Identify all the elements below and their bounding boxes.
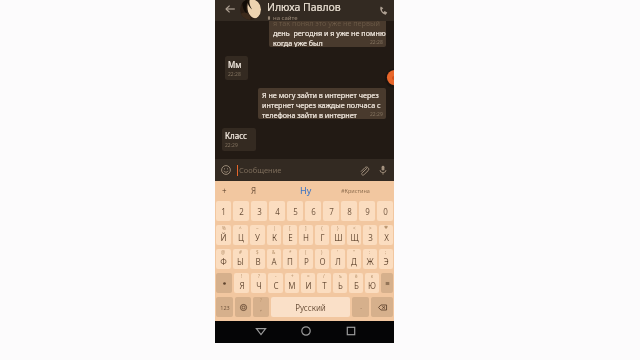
- button[interactable]: Home: [296, 321, 316, 341]
- button[interactable]: ;: [379, 249, 393, 269]
- staticText: {: [321, 225, 323, 231]
- button[interactable]: 0: [377, 201, 393, 221]
- staticText: Ш: [334, 232, 343, 243]
- button[interactable]: =: [301, 273, 315, 293]
- button[interactable]: +: [215, 181, 234, 199]
- staticText: ъ: [339, 273, 342, 279]
- button[interactable]: ё: [349, 273, 363, 293]
- button[interactable]: 7: [323, 201, 339, 221]
- staticText: 22:28: [370, 39, 383, 46]
- button[interactable]: 1: [216, 201, 231, 221]
- staticText: Я: [251, 185, 257, 196]
- button[interactable]: 9: [359, 201, 375, 221]
- button[interactable]: }: [331, 225, 345, 245]
- button[interactable]: ?: [253, 297, 269, 317]
- staticText: О: [319, 256, 326, 267]
- button[interactable]: ~: [250, 225, 265, 245]
- button[interactable]: 4: [269, 201, 285, 221]
- button[interactable]: Русский: [271, 297, 350, 317]
- button[interactable]: 8: [341, 201, 357, 221]
- button[interactable]: є: [365, 273, 379, 293]
- button[interactable]: Voice message: [376, 163, 390, 177]
- button[interactable]: [371, 297, 393, 317]
- button[interactable]: Ну: [274, 181, 337, 199]
- button[interactable]: Мм: [225, 56, 248, 80]
- button[interactable]: Класс: [222, 128, 256, 151]
- staticText: П: [287, 256, 293, 267]
- staticText: Т: [322, 280, 327, 291]
- staticText: ~: [256, 225, 259, 231]
- button[interactable]: ?: [251, 273, 266, 293]
- button[interactable]: @: [216, 249, 231, 269]
- staticText: ": [353, 249, 355, 255]
- staticText: на сайте: [273, 14, 298, 21]
- button[interactable]: 6: [305, 201, 321, 221]
- staticText: интернет через каждые полчаса с: [262, 100, 381, 110]
- staticText: є: [371, 273, 374, 279]
- button[interactable]: 2: [233, 201, 249, 221]
- button[interactable]: Scroll to bottom: [385, 68, 394, 88]
- button[interactable]: Attach file: [357, 163, 371, 177]
- staticText: >: [369, 225, 372, 231]
- staticText: я так понял это уже не первый: [273, 18, 380, 28]
- button[interactable]: ^: [233, 225, 248, 245]
- button[interactable]: ): [315, 249, 329, 269]
- button[interactable]: я так понял это уже не первый: [269, 17, 386, 47]
- button[interactable]: Recent apps: [341, 321, 361, 341]
- button[interactable]: ]: [299, 225, 313, 245]
- staticText: 22:29: [370, 111, 383, 118]
- staticText: Е: [288, 232, 293, 243]
- staticText: Г: [320, 232, 325, 243]
- button[interactable]: (: [299, 249, 313, 269]
- button[interactable]: *: [283, 249, 297, 269]
- staticText: /: [323, 273, 325, 279]
- staticText: 8: [347, 206, 352, 217]
- button[interactable]: Я: [234, 181, 274, 199]
- staticText: +: [291, 273, 294, 279]
- button[interactable]: Back: [251, 321, 271, 341]
- button[interactable]: {: [315, 225, 329, 245]
- button[interactable]: Back: [220, 0, 239, 19]
- button[interactable]: [: [283, 225, 297, 245]
- button[interactable]: /: [317, 273, 331, 293]
- button[interactable]: $: [250, 249, 265, 269]
- staticText: 0: [383, 206, 388, 217]
- button[interactable]: 123: [216, 297, 233, 317]
- button[interactable]: [235, 297, 251, 317]
- button[interactable]: #: [233, 249, 248, 269]
- staticText: телефона зайти в интернет: [262, 110, 357, 119]
- button[interactable]: [381, 273, 393, 293]
- staticText: #Кристина: [341, 187, 370, 194]
- staticText: ': [337, 249, 339, 255]
- staticText: когда уже был: [273, 38, 323, 47]
- button[interactable]: !: [234, 273, 249, 293]
- button[interactable]: #Кристина: [337, 181, 374, 199]
- button[interactable]: >: [363, 225, 377, 245]
- button[interactable]: <: [347, 225, 361, 245]
- button[interactable]: ъ: [333, 273, 347, 293]
- button[interactable]: 3: [251, 201, 267, 221]
- button[interactable]: -: [268, 273, 283, 293]
- staticText: Д: [351, 256, 357, 267]
- button[interactable]: 5: [287, 201, 303, 221]
- button[interactable]: ♥: [379, 225, 393, 245]
- staticText: 9: [365, 206, 370, 217]
- button[interactable]: &: [267, 249, 281, 269]
- button[interactable]: |: [267, 225, 281, 245]
- button[interactable]: :: [363, 249, 377, 269]
- staticText: Я: [239, 280, 245, 291]
- button[interactable]: [216, 273, 232, 293]
- button[interactable]: +: [285, 273, 299, 293]
- staticText: Э: [383, 256, 389, 267]
- button[interactable]: ": [347, 249, 361, 269]
- button[interactable]: ': [331, 249, 345, 269]
- button[interactable]: Call: [375, 2, 392, 19]
- staticText: .: [360, 303, 362, 311]
- staticText: Русский: [295, 302, 326, 313]
- button[interactable]: Emoji: [219, 163, 233, 177]
- button[interactable]: %: [216, 225, 231, 245]
- button[interactable]: Я не могу зайти в интернет через: [258, 88, 386, 119]
- staticText: ?: [260, 297, 262, 303]
- staticText: ?: [258, 273, 260, 279]
